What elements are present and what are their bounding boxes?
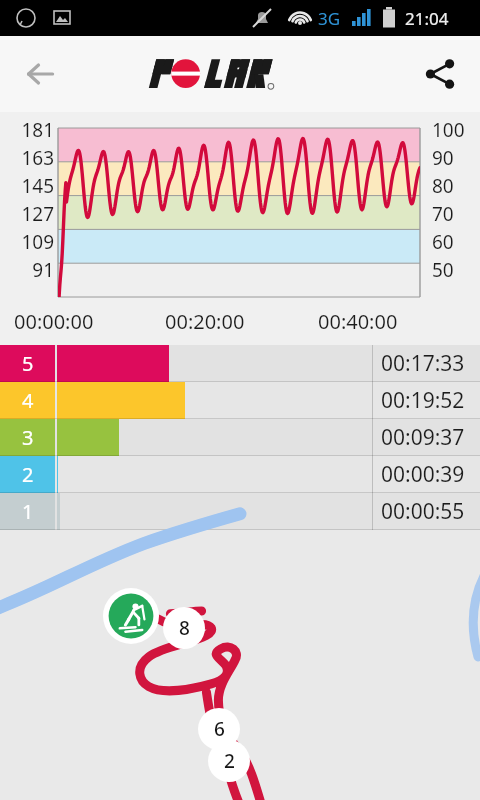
staticText: 60 <box>432 229 454 255</box>
staticText: 1 <box>22 498 34 525</box>
staticText: 4 <box>22 387 34 414</box>
button[interactable]: Share <box>414 48 466 100</box>
staticText: 00:40:00 <box>318 308 398 335</box>
button[interactable]: Back <box>14 48 66 100</box>
staticText: 5 <box>22 350 34 377</box>
staticText: 90 <box>432 145 454 171</box>
button[interactable]: 1 <box>0 493 480 530</box>
staticText: 00:00:39 <box>381 460 465 489</box>
staticText: 00:20:00 <box>165 308 245 335</box>
staticText: 00:00:55 <box>381 497 465 526</box>
staticText: 127 <box>0 201 54 227</box>
staticText: 00:17:33 <box>381 349 465 378</box>
button[interactable]: 4 <box>0 382 480 419</box>
button[interactable]: 5 <box>0 345 480 382</box>
staticText: 6 <box>214 716 225 742</box>
staticText: 00:09:37 <box>381 423 465 452</box>
staticText: 70 <box>432 201 454 227</box>
staticText: 181 <box>0 117 54 143</box>
staticText: 8 <box>179 615 190 641</box>
staticText: 50 <box>432 257 454 283</box>
staticText: 21:04 <box>405 7 449 30</box>
button[interactable]: 6 <box>198 708 240 750</box>
staticText: 00:19:52 <box>381 386 465 415</box>
button[interactable]: 3 <box>0 419 480 456</box>
staticText: 145 <box>0 173 54 199</box>
staticText: 100 <box>432 117 465 143</box>
staticText: 3G <box>318 7 341 30</box>
button[interactable]: 2 <box>208 740 250 782</box>
staticText: 00:00:00 <box>14 308 94 335</box>
button[interactable]: Start point <box>0 530 480 800</box>
staticText: 109 <box>0 229 54 255</box>
button[interactable]: 2 <box>0 456 480 493</box>
staticText: 2 <box>22 461 34 488</box>
staticText: 2 <box>224 748 235 774</box>
staticText: 3 <box>22 424 34 451</box>
staticText: 80 <box>432 173 454 199</box>
button[interactable]: 8 <box>163 607 205 649</box>
staticText: 91 <box>0 257 54 283</box>
button[interactable]: Start point <box>103 588 159 644</box>
staticText: 163 <box>0 145 54 171</box>
